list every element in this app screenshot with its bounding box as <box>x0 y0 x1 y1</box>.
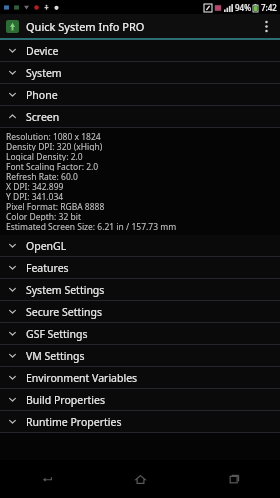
staticText: Device <box>26 44 59 58</box>
button[interactable]: System Settings <box>0 279 280 300</box>
staticText: Refresh Rate: 60.0 <box>6 171 78 181</box>
staticText: OpenGL <box>26 239 67 253</box>
staticText: Estimated Screen Size: 6.21 in / 157.73 … <box>6 221 177 231</box>
staticText: GSF Settings <box>26 327 88 341</box>
button[interactable]: Screen <box>0 106 280 127</box>
staticText: Build Properties <box>26 393 105 407</box>
button[interactable]: Recent apps <box>187 460 280 498</box>
button[interactable]: Device <box>0 40 280 61</box>
button[interactable]: Features <box>0 257 280 278</box>
staticText: Color Depth: 32 bit <box>6 211 82 221</box>
staticText: Screen <box>26 110 60 124</box>
staticText: Features <box>26 261 69 275</box>
button[interactable]: Secure Settings <box>0 301 280 322</box>
button[interactable]: More options <box>258 14 274 38</box>
staticText: Environment Variables <box>26 371 138 385</box>
button[interactable]: Build Properties <box>0 389 280 410</box>
staticText: 94% <box>235 2 251 13</box>
staticText: System <box>26 66 62 80</box>
staticText: Quick System Info PRO <box>26 19 145 34</box>
button[interactable]: System <box>0 62 280 83</box>
staticText: Logical Density: 2.0 <box>6 151 83 161</box>
staticText: X DPI: 342.899 <box>6 181 64 191</box>
staticText: Phone <box>26 88 58 102</box>
button[interactable]: OpenGL <box>0 235 280 256</box>
staticText: Runtime Properties <box>26 415 122 429</box>
button[interactable]: Home <box>94 460 187 498</box>
staticText: Density DPI: 320 (xHigh) <box>6 141 103 151</box>
button[interactable]: VM Settings <box>0 345 280 366</box>
button[interactable]: Runtime Properties <box>0 411 280 432</box>
staticText: VM Settings <box>26 349 85 363</box>
staticText: 7:42 <box>261 2 277 13</box>
staticText: Pixel Format: RGBA 8888 <box>6 201 105 211</box>
staticText: System Settings <box>26 283 105 297</box>
staticText: Font Scaling Factor: 2.0 <box>6 161 99 171</box>
staticText: Y DPI: 341.034 <box>6 191 64 201</box>
staticText: Secure Settings <box>26 305 102 319</box>
staticText: Resolution: 1080 x 1824 <box>6 131 101 141</box>
button[interactable]: Back <box>0 460 94 498</box>
button[interactable]: Phone <box>0 84 280 105</box>
button[interactable]: Environment Variables <box>0 367 280 388</box>
button[interactable]: GSF Settings <box>0 323 280 344</box>
